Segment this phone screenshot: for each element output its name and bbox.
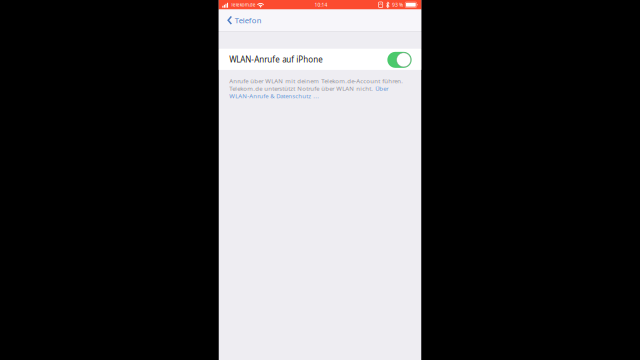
staticText: WLAN-Anrufe auf iPhone <box>229 54 323 65</box>
staticText: 93 % <box>392 1 403 8</box>
staticText: WLAN-Anrufe & Datenschutz ... <box>229 92 319 100</box>
staticText: Telekom.de <box>231 2 256 8</box>
staticText: 10:14 <box>314 1 327 8</box>
staticText: Anrufe über WLAN mit deinem Telekom.de-A… <box>229 77 403 85</box>
button[interactable]: WLAN-Anrufe auf iPhone <box>219 49 421 70</box>
staticText: Über <box>375 84 388 92</box>
button[interactable]: Telefon <box>219 9 268 31</box>
staticText: Telefon <box>235 15 262 25</box>
staticText: Telekom.de unterstützt Notrufe über WLAN… <box>229 84 375 92</box>
